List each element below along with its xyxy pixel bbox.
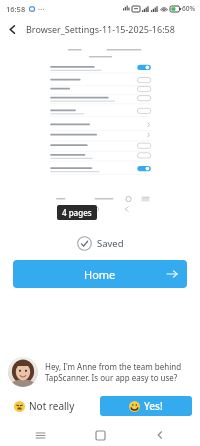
staticText: 4 pages [62,207,92,218]
button[interactable]: Not really [8,395,81,417]
staticText: Yes! [144,399,163,413]
button[interactable]: 4 pages [62,207,92,218]
staticText: 60% [182,4,195,13]
staticText: Hey, I'm Anne from the team behind TapSc… [45,361,182,383]
button[interactable] [42,44,159,220]
button[interactable]: Home [13,260,187,288]
button[interactable]: Home [80,424,120,446]
button[interactable]: Anne avatar [8,357,38,387]
staticText: Not really [29,399,75,413]
button[interactable]: Back [140,424,180,446]
staticText: Browser_Settings-11-15-2025-16:58 [26,23,175,35]
button[interactable]: Yes! [100,396,192,416]
staticText: Home [84,267,116,282]
staticText: 16:58 [6,4,26,14]
button[interactable]: Recents [20,424,60,446]
staticText: Saved [97,237,124,250]
button[interactable]: Back [0,17,24,41]
